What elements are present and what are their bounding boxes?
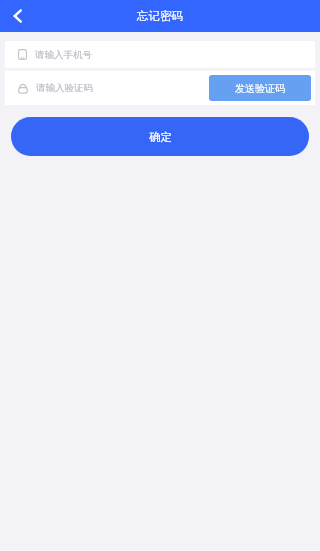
staticText: 确定: [149, 130, 172, 144]
staticText: 忘记密码: [137, 9, 183, 23]
staticText: 请输入验证码: [36, 82, 93, 94]
staticText: 发送验证码: [235, 82, 285, 95]
button[interactable]: Back: [4, 2, 32, 30]
button[interactable]: 确定: [11, 117, 309, 156]
staticText: 请输入手机号: [35, 49, 92, 61]
button[interactable]: 发送验证码: [209, 75, 311, 101]
button[interactable]: 请输入手机号: [5, 41, 315, 68]
button[interactable]: 请输入验证码: [18, 82, 209, 94]
